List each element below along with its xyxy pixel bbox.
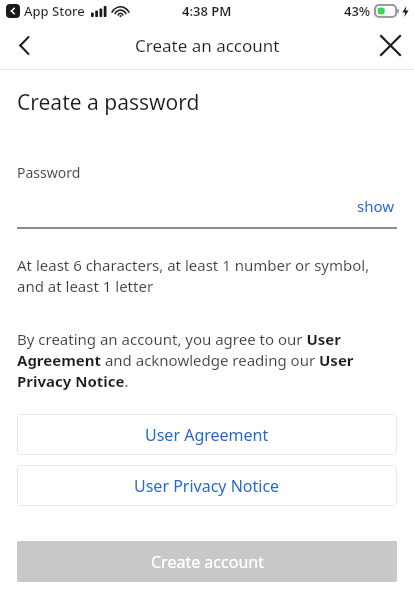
button[interactable]: User Privacy Notice: [17, 465, 397, 506]
staticText: App Store: [24, 2, 85, 20]
button[interactable]: show: [355, 194, 397, 218]
staticText: Create a password: [17, 88, 200, 117]
staticText: User Privacy Notice: [134, 475, 280, 497]
button[interactable]: Back: [0, 22, 48, 69]
staticText: 4:38 PM: [182, 2, 232, 20]
staticText: show: [357, 196, 395, 216]
staticText: Create an account: [135, 34, 280, 57]
button[interactable]: Close: [366, 22, 414, 69]
staticText: Create account: [151, 551, 264, 573]
button[interactable]: Create account: [17, 541, 397, 582]
staticText: User Agreement: [145, 424, 269, 446]
staticText: At least 6 characters, at least 1 number…: [17, 255, 397, 297]
button[interactable]: User Agreement: [17, 414, 397, 455]
staticText: Password: [17, 163, 81, 182]
staticText: 43%: [344, 2, 371, 20]
staticText: By creating an account, you agree to our…: [17, 329, 397, 392]
